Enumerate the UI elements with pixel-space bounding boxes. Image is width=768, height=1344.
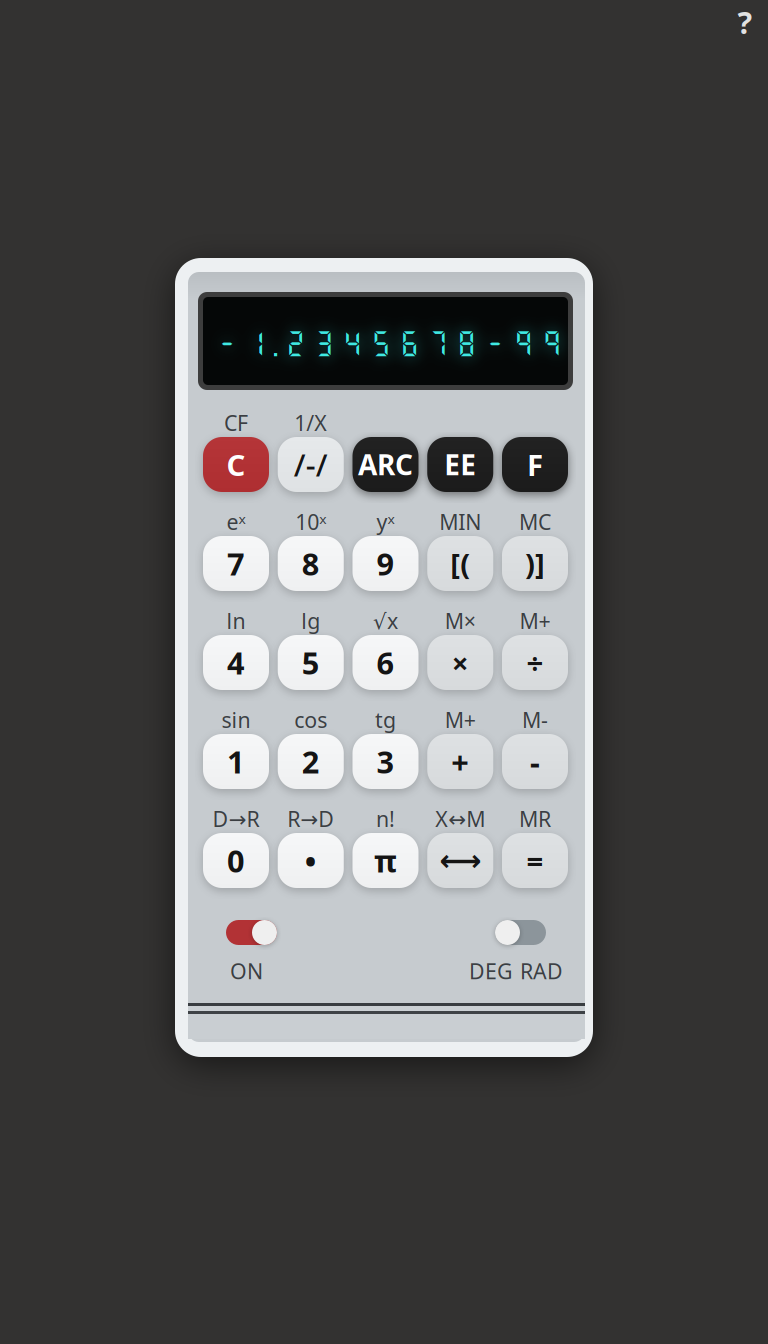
staticText: 5 bbox=[302, 642, 320, 683]
staticText: + bbox=[451, 741, 469, 782]
staticText: - bbox=[530, 741, 540, 782]
staticText: D→R bbox=[212, 805, 259, 833]
staticText: -1.2345678-99 bbox=[217, 327, 562, 359]
staticText: DEG bbox=[469, 957, 513, 985]
staticText: F bbox=[527, 445, 543, 484]
button[interactable]: • bbox=[278, 833, 344, 888]
staticText: /-/ bbox=[294, 444, 328, 485]
staticText: n! bbox=[376, 805, 395, 833]
button[interactable]: × bbox=[427, 635, 493, 690]
staticText: 3 bbox=[376, 741, 394, 782]
staticText: • bbox=[305, 840, 317, 881]
staticText: 9 bbox=[376, 543, 394, 584]
staticText: )] bbox=[525, 544, 545, 583]
staticText: yˣ bbox=[376, 508, 394, 536]
staticText: π bbox=[374, 840, 397, 881]
staticText: MR bbox=[519, 805, 551, 833]
button[interactable]: ÷ bbox=[502, 635, 568, 690]
button[interactable]: = bbox=[502, 833, 568, 888]
staticText: X↔M bbox=[435, 805, 485, 833]
staticText: ln bbox=[226, 607, 245, 635]
staticText: 2 bbox=[302, 741, 320, 782]
staticText: C bbox=[226, 445, 245, 484]
staticText: R→D bbox=[287, 805, 334, 833]
staticText: ON bbox=[230, 957, 263, 985]
staticText: MC bbox=[519, 508, 551, 536]
staticText: 8 bbox=[302, 543, 320, 584]
staticText: M- bbox=[522, 706, 548, 734]
staticText: 1/X bbox=[294, 409, 327, 437]
button[interactable]: Help bbox=[723, 0, 767, 44]
button[interactable]: EE bbox=[427, 437, 493, 492]
staticText: 7 bbox=[227, 543, 245, 584]
staticText: √x bbox=[373, 607, 398, 635]
staticText: 1 bbox=[227, 741, 245, 782]
staticText: EE bbox=[444, 446, 476, 483]
button[interactable]: [( bbox=[427, 536, 493, 591]
staticText: ÷ bbox=[526, 643, 543, 682]
button[interactable]: - bbox=[502, 734, 568, 789]
staticText: 0 bbox=[227, 840, 245, 881]
staticText: 10ˣ bbox=[295, 508, 326, 536]
staticText: 4 bbox=[227, 642, 245, 683]
button[interactable]: /-/ bbox=[278, 437, 344, 492]
staticText: × bbox=[452, 643, 469, 682]
button[interactable]: + bbox=[427, 734, 493, 789]
staticText: [( bbox=[450, 544, 470, 583]
staticText: lg bbox=[301, 607, 320, 635]
button[interactable]: )] bbox=[502, 536, 568, 591]
button[interactable]: 6 bbox=[352, 635, 418, 690]
button[interactable]: C bbox=[203, 437, 269, 492]
staticText: sin bbox=[221, 706, 250, 734]
staticText: M+ bbox=[519, 607, 550, 635]
staticText: RAD bbox=[520, 957, 563, 985]
button[interactable]: 5 bbox=[278, 635, 344, 690]
staticText: tg bbox=[375, 706, 396, 734]
staticText: = bbox=[526, 841, 543, 880]
staticText: MIN bbox=[439, 508, 481, 536]
staticText: ? bbox=[737, 2, 752, 42]
button[interactable]: F bbox=[502, 437, 568, 492]
button[interactable]: 0 bbox=[203, 833, 269, 888]
staticText: ARC bbox=[358, 446, 413, 483]
button[interactable]: ARC bbox=[352, 437, 418, 492]
button[interactable]: 9 bbox=[352, 536, 418, 591]
staticText: M+ bbox=[445, 706, 476, 734]
staticText: ⟷ bbox=[439, 844, 481, 877]
staticText: 6 bbox=[376, 642, 394, 683]
staticText: cos bbox=[294, 706, 327, 734]
staticText: eˣ bbox=[226, 508, 245, 536]
button[interactable]: 8 bbox=[278, 536, 344, 591]
button[interactable]: 3 bbox=[352, 734, 418, 789]
staticText: M× bbox=[445, 607, 476, 635]
button[interactable]: 1 bbox=[203, 734, 269, 789]
button[interactable]: 7 bbox=[203, 536, 269, 591]
button[interactable]: π bbox=[352, 833, 418, 888]
staticText: CF bbox=[224, 409, 248, 437]
button[interactable]: 4 bbox=[203, 635, 269, 690]
button[interactable]: 2 bbox=[278, 734, 344, 789]
button[interactable]: ⟷ bbox=[427, 833, 493, 888]
